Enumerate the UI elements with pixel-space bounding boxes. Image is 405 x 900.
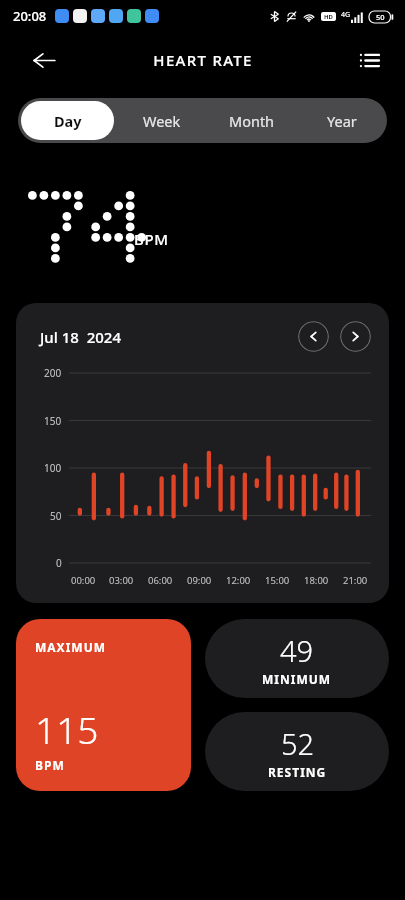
staticText: 06:00 xyxy=(148,574,173,587)
staticText: BPM xyxy=(134,229,169,249)
staticText: Month xyxy=(229,111,275,131)
staticText: 50 xyxy=(376,12,385,22)
staticText: 50 xyxy=(50,509,62,523)
staticText: 0 xyxy=(56,556,62,570)
staticText: RESTING xyxy=(268,764,327,780)
staticText: Year xyxy=(327,111,357,131)
staticText: 52 xyxy=(281,724,315,763)
staticText: BPM xyxy=(35,757,65,773)
staticText: HEART RATE xyxy=(153,50,253,70)
staticText: 150 xyxy=(44,414,62,428)
button[interactable]: MAXIMUM xyxy=(16,619,191,791)
staticText: Day xyxy=(54,111,82,131)
button[interactable]: 52 xyxy=(205,712,389,791)
staticText: 09:00 xyxy=(187,574,212,587)
staticText: 18:00 xyxy=(304,574,329,587)
staticText: 4G xyxy=(341,10,351,20)
button[interactable]: Jul 18 2024 xyxy=(16,303,389,603)
staticText: MAXIMUM xyxy=(35,639,107,655)
staticText: 00:00 xyxy=(71,574,96,587)
staticText: 15:00 xyxy=(265,574,290,587)
staticText: HD xyxy=(324,13,333,21)
staticText: 21:00 xyxy=(343,574,368,587)
staticText: 49 xyxy=(280,631,314,670)
button[interactable]: 49 xyxy=(205,619,389,698)
button[interactable]: Back xyxy=(24,40,64,80)
staticText: 200 xyxy=(44,366,62,380)
button[interactable]: Next day xyxy=(340,321,371,352)
button[interactable]: Year xyxy=(300,101,384,140)
staticText: 115 xyxy=(35,704,99,754)
staticText: 12:00 xyxy=(226,574,251,587)
button[interactable]: History list xyxy=(349,40,389,80)
button[interactable]: Day xyxy=(21,101,114,140)
staticText: Jul 18 2024 xyxy=(40,327,121,347)
button[interactable]: Month xyxy=(210,101,294,140)
button[interactable]: Week xyxy=(120,101,204,140)
button[interactable]: Previous day xyxy=(298,321,329,352)
staticText: 03:00 xyxy=(109,574,134,587)
staticText: 20:08 xyxy=(13,7,47,25)
staticText: Week xyxy=(143,111,181,131)
staticText: 100 xyxy=(44,461,62,475)
staticText: MINIMUM xyxy=(262,671,332,687)
